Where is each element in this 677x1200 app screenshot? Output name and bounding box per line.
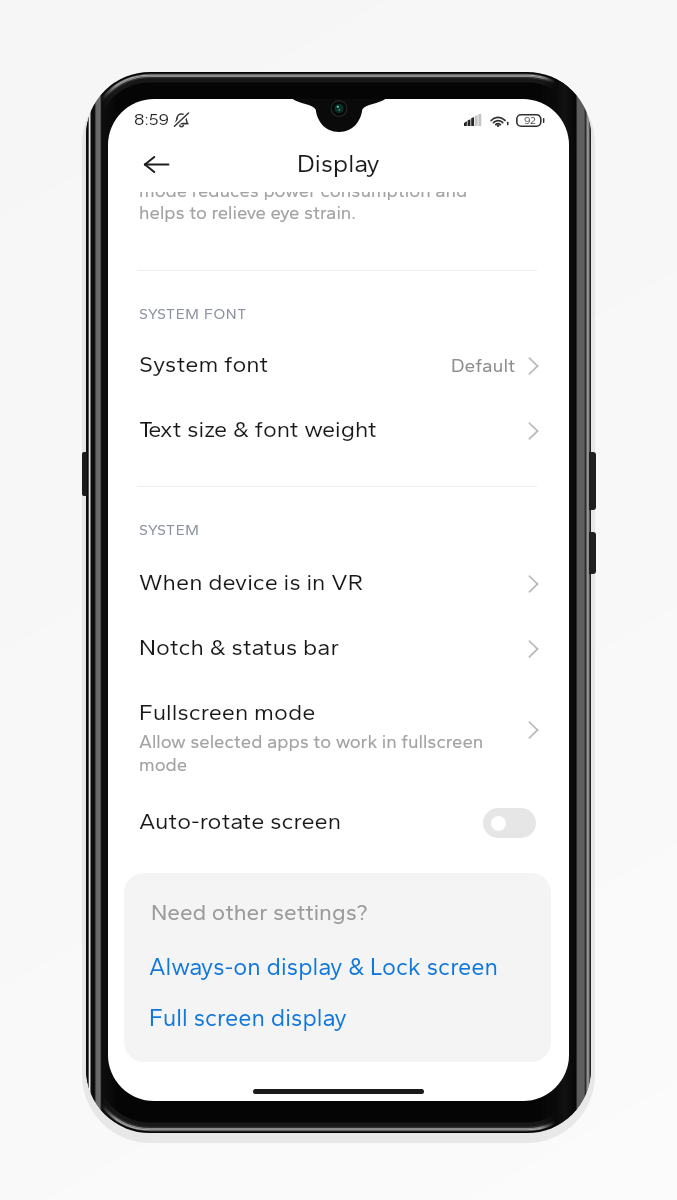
button[interactable]: Auto-rotate screen (108, 791, 569, 855)
staticText: Allow selected apps to work in fullscree… (139, 730, 487, 775)
button[interactable]: Fullscreen mode (108, 680, 569, 776)
staticText: Auto-rotate screen (139, 807, 342, 835)
staticText: Display (297, 148, 380, 178)
staticText: 8:59 (134, 109, 169, 129)
button[interactable]: System font (108, 334, 569, 398)
staticText: Need other settings? (151, 899, 368, 926)
button[interactable]: When device is in VR (108, 552, 569, 616)
staticText: Text size & font weight (139, 415, 377, 443)
staticText: When device is in VR (139, 568, 363, 596)
button[interactable]: Back (133, 141, 179, 187)
staticText: System font (139, 350, 268, 378)
staticText: SYSTEM (139, 521, 200, 539)
staticText: 92 (524, 114, 536, 127)
button[interactable]: Text size & font weight (108, 399, 569, 463)
staticText: helps to relieve eye strain. (139, 201, 356, 223)
staticText: mode reduces power consumption and (139, 192, 468, 201)
staticText: Fullscreen mode (139, 698, 316, 726)
staticText: SYSTEM FONT (139, 305, 247, 323)
button[interactable]: Notch & status bar (108, 617, 569, 681)
staticText: Notch & status bar (139, 633, 340, 661)
button[interactable]: Always-on display & Lock screen (149, 952, 499, 980)
button[interactable]: Full screen display (149, 1003, 347, 1031)
staticText: Default (451, 354, 516, 377)
